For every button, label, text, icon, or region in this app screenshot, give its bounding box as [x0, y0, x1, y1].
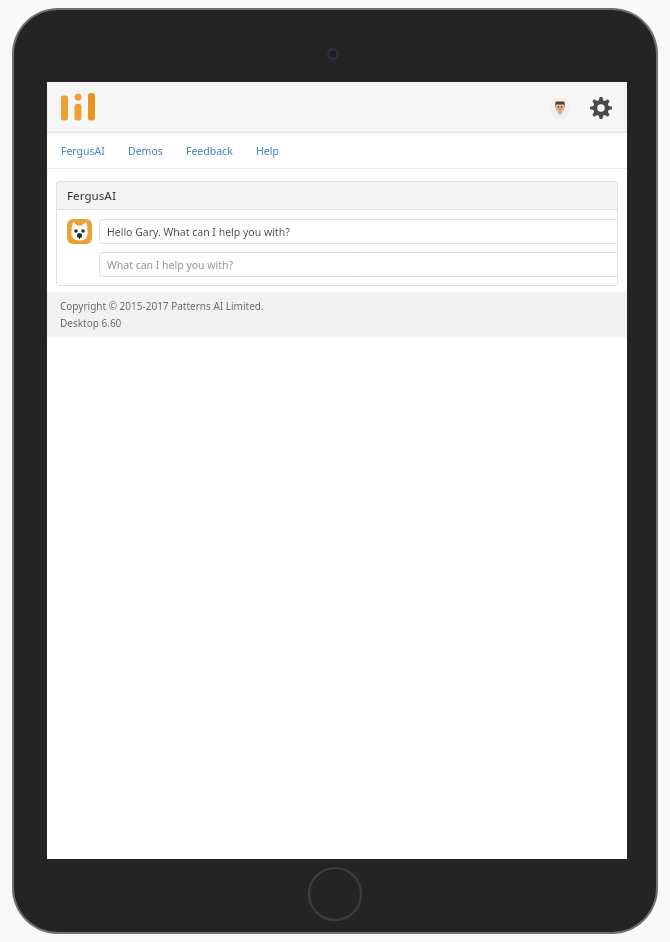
staticText: Copyright © 2015-2017 Patterns AI Limite… — [60, 299, 264, 313]
staticText: Desktop 6.60 — [60, 316, 122, 330]
staticText: FergusAI — [67, 188, 116, 204]
button[interactable]: Fergus avatar — [67, 219, 92, 244]
staticText: Help — [256, 144, 279, 158]
button[interactable]: FergusAI — [61, 140, 105, 162]
button[interactable]: Demos — [128, 140, 163, 162]
staticText: What can I help you with? — [107, 258, 234, 272]
staticText: FergusAI — [61, 144, 105, 158]
staticText: Demos — [128, 144, 163, 158]
button[interactable]: Settings — [589, 96, 613, 120]
button[interactable]: Feedback — [186, 140, 233, 162]
button[interactable]: Account — [549, 97, 571, 119]
button[interactable]: What can I help you with? — [99, 252, 618, 277]
staticText: Hello Gary. What can I help you with? — [107, 225, 290, 239]
staticText: Feedback — [186, 144, 233, 158]
button[interactable]: FergusAI logo — [61, 93, 95, 123]
button[interactable]: Hello Gary. What can I help you with? — [99, 219, 618, 244]
button[interactable]: Help — [256, 140, 279, 162]
